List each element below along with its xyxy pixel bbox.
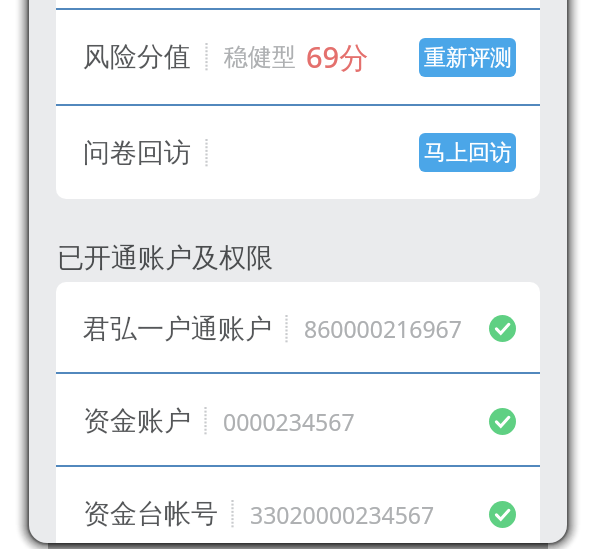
other: Verified — [489, 315, 516, 342]
staticText: 已开通账户及权限 — [57, 241, 273, 275]
staticText: 69分 — [306, 37, 369, 77]
button[interactable]: 君弘一户通账户 — [56, 282, 540, 372]
other: Verified — [489, 408, 516, 435]
staticText: 君弘一户通账户 — [83, 312, 272, 346]
button[interactable]: 资金台帐号 — [56, 467, 540, 543]
button[interactable]: 风险分值 — [56, 10, 540, 104]
button[interactable]: 马上回访 — [419, 133, 516, 172]
staticText: 风险分值 — [83, 40, 191, 74]
staticText: 稳健型 — [224, 42, 296, 72]
button[interactable]: 重新评测 — [419, 38, 516, 77]
staticText: 重新评测 — [424, 44, 512, 72]
staticText: 问卷回访 — [83, 136, 191, 170]
staticText: 860000216967 — [304, 313, 462, 344]
other: Verified — [489, 501, 516, 528]
staticText: 马上回访 — [424, 139, 512, 167]
staticText: 资金账户 — [83, 404, 191, 438]
staticText: 资金台帐号 — [83, 497, 218, 531]
staticText: 33020000234567 — [250, 499, 435, 530]
button[interactable]: 问卷回访 — [56, 106, 540, 199]
staticText: 0000234567 — [223, 406, 355, 437]
button[interactable]: 资金账户 — [56, 374, 540, 465]
